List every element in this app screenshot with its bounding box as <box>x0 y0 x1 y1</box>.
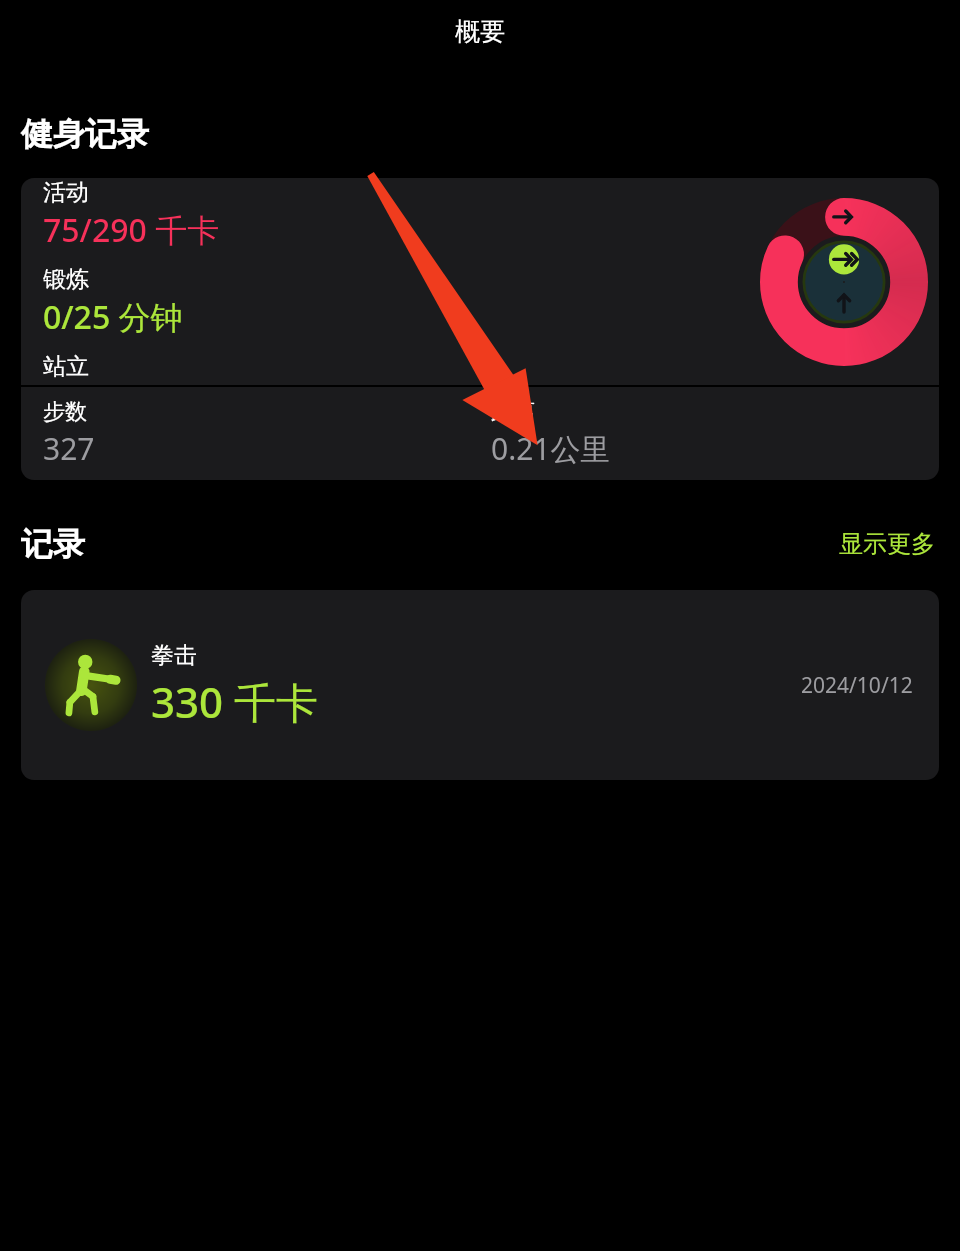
staticText: 活动 <box>43 178 89 207</box>
staticText: 记录 <box>21 524 85 564</box>
staticText: 显示更多 <box>839 529 935 559</box>
staticText: 健身记录 <box>21 114 149 154</box>
staticText: 2024/10/12 <box>801 671 913 700</box>
button[interactable]: Boxing <box>21 590 939 780</box>
button[interactable]: 显示更多 <box>835 525 939 563</box>
staticText: 距离 <box>491 398 535 426</box>
staticText: 75/290 千卡 <box>43 208 220 252</box>
staticText: 0/25 分钟 <box>43 295 183 339</box>
button[interactable]: 活动 <box>21 178 939 480</box>
staticText: 0.21公里 <box>491 428 611 469</box>
other: Boxing <box>43 637 139 733</box>
staticText: 锻炼 <box>43 265 89 294</box>
staticText: 站立 <box>43 352 89 381</box>
staticText: 327 <box>43 428 95 469</box>
staticText: 概要 <box>455 16 505 47</box>
staticText: 步数 <box>43 398 87 426</box>
staticText: 330 千卡 <box>151 673 318 730</box>
other: Activity rings <box>760 198 928 366</box>
staticText: 拳击 <box>151 641 197 670</box>
